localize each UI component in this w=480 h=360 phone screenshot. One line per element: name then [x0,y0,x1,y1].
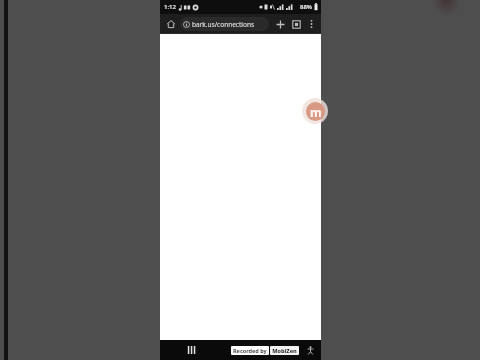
button[interactable]: Accessibility [303,343,317,357]
button[interactable]: Screen recorder overlay [302,98,328,124]
button[interactable]: bark.us/connections [180,17,269,31]
staticText: m [310,104,322,120]
button[interactable]: Switch tabs [288,16,304,32]
staticText: bark.us/connections [192,20,255,29]
staticText: 88% [300,3,312,11]
staticText: MobiZen [272,347,297,354]
button[interactable]: Home [163,16,178,31]
staticText: Recorded by [233,347,267,354]
button[interactable]: Recent apps [182,341,200,359]
button[interactable]: New tab [272,16,288,32]
button[interactable]: More options [304,17,318,31]
staticText: 1:12 [164,3,176,11]
